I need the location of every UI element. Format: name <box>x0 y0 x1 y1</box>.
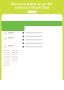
staticText: Get started <box>27 11 37 13</box>
button[interactable] <box>22 39 60 41</box>
button[interactable] <box>22 35 60 37</box>
staticText: Advanced system to get the <box>11 2 53 6</box>
button[interactable] <box>22 46 60 48</box>
button[interactable] <box>3 45 20 48</box>
button[interactable] <box>3 37 20 40</box>
button[interactable] <box>22 32 60 34</box>
button[interactable] <box>3 32 20 35</box>
button[interactable] <box>22 42 60 44</box>
staticText: most out of Secure Data <box>14 6 49 9</box>
button[interactable]: Get started <box>27 11 37 13</box>
